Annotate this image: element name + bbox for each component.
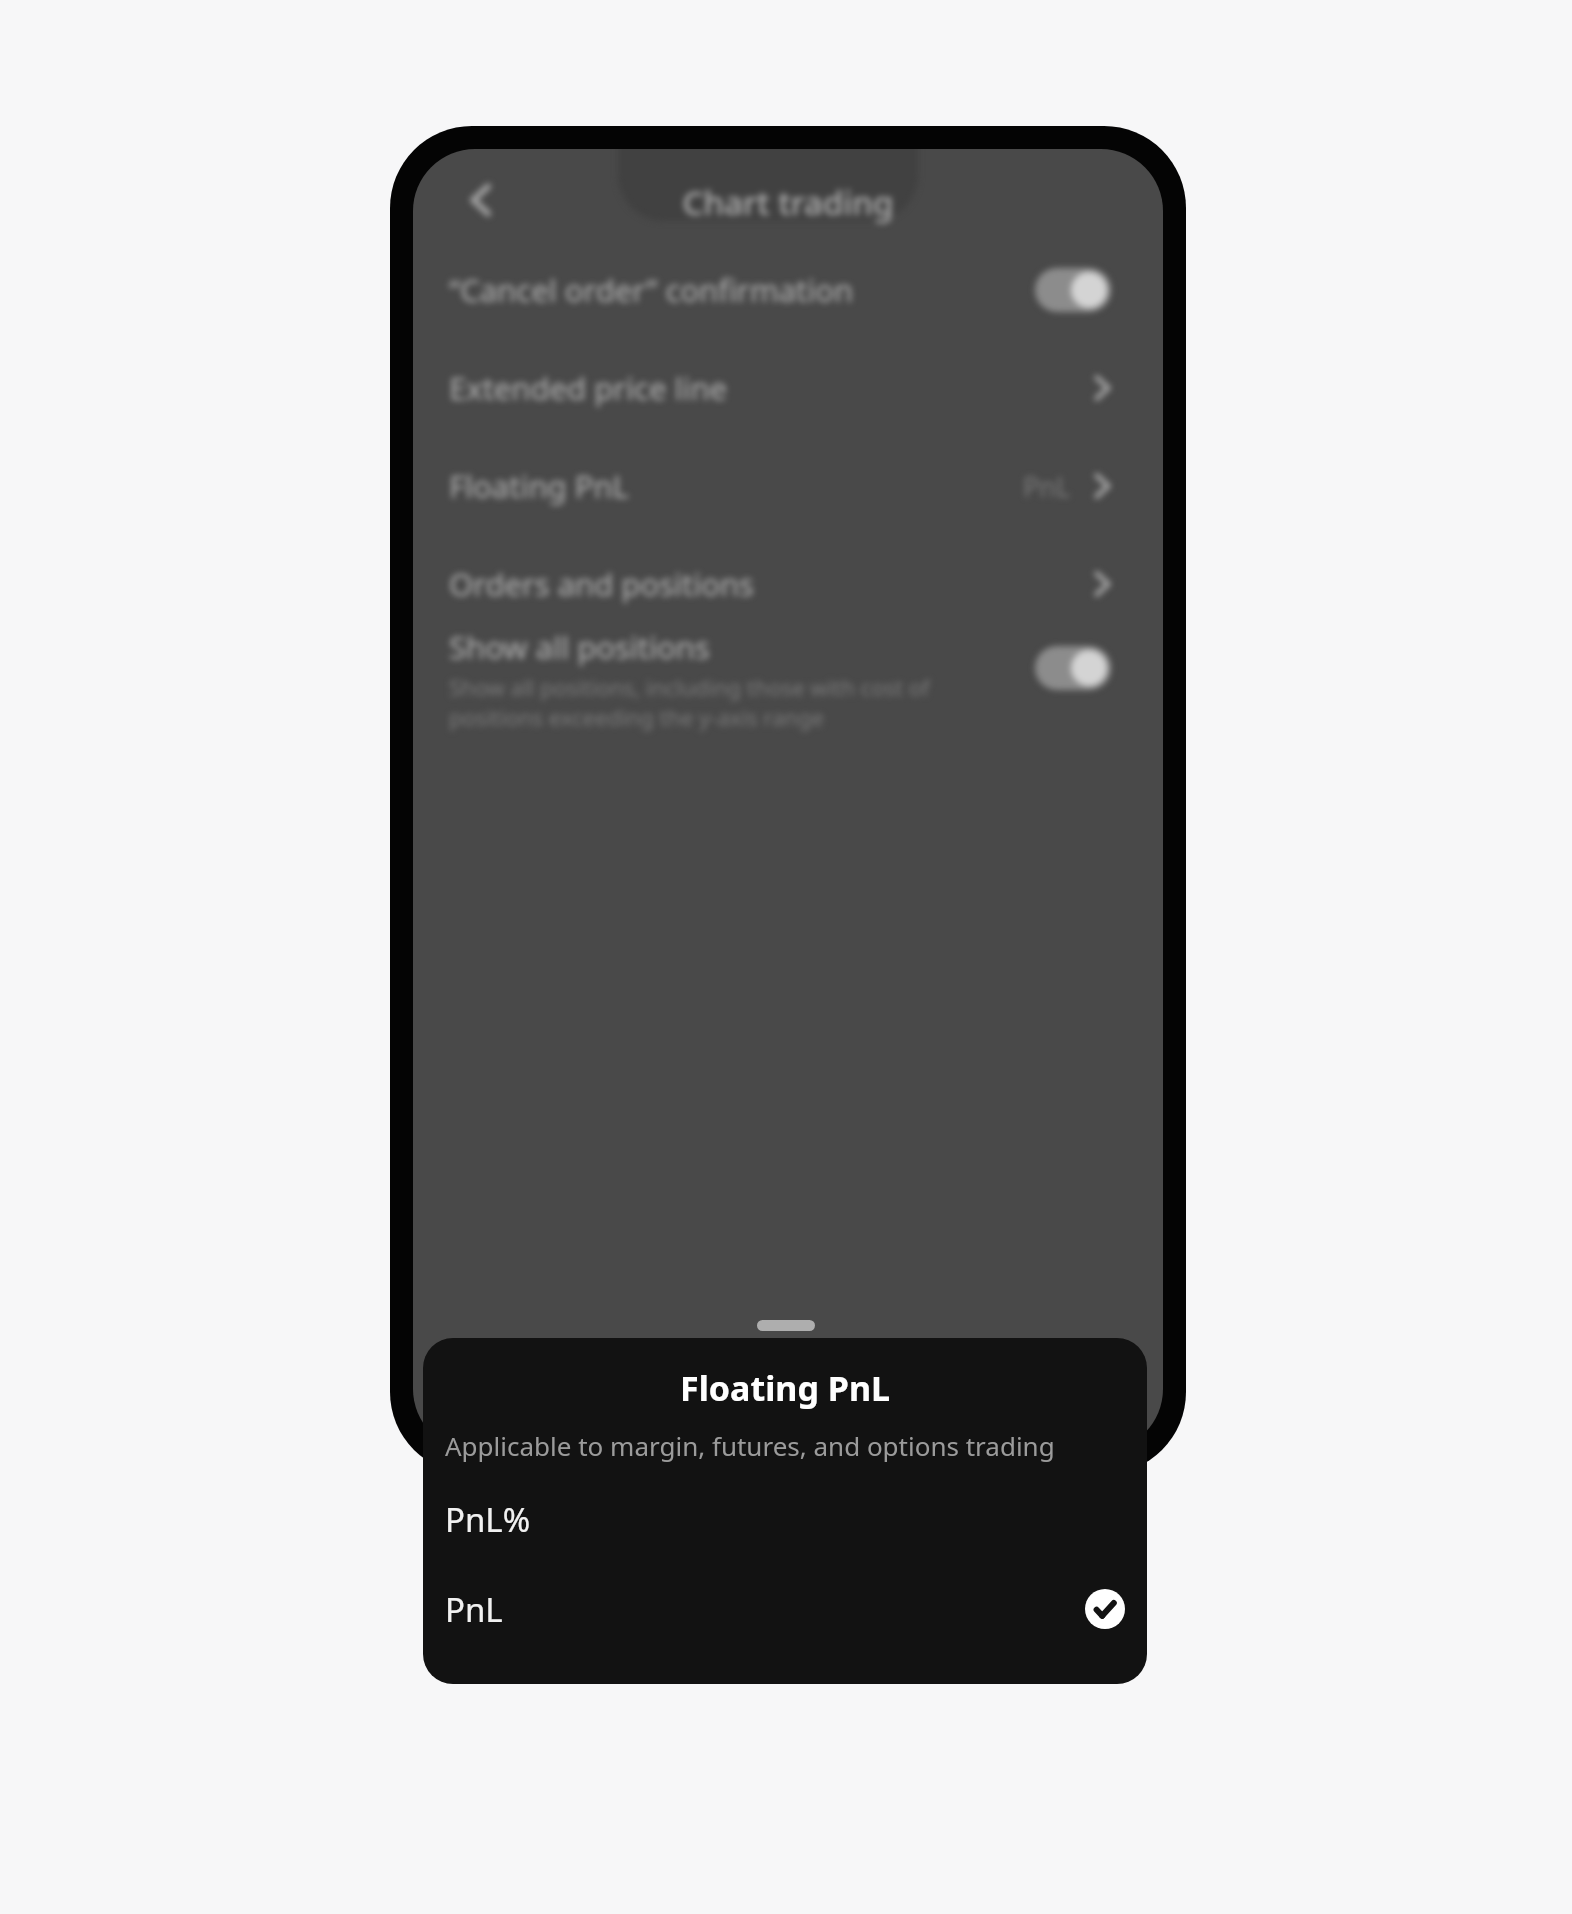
staticText: Applicable to margin, futures, and optio… (445, 1428, 1055, 1463)
button[interactable]: Toggle (1035, 646, 1111, 690)
button[interactable]: “Cancel order” confirmation (413, 241, 1163, 339)
staticText: “Cancel order” confirmation (449, 269, 854, 311)
staticText: PnL (445, 1587, 503, 1632)
staticText: Extended price line (449, 367, 728, 409)
button[interactable]: Orders and positions (413, 535, 1163, 633)
button[interactable]: Extended price line (413, 339, 1163, 437)
staticText: Chart trading (682, 180, 894, 225)
staticText: Floating PnL (449, 465, 629, 507)
button[interactable]: PnL (423, 1566, 1147, 1652)
staticText: Floating PnL (423, 1365, 1147, 1411)
staticText: Show all positions, including those with… (449, 672, 930, 732)
staticText: Show all positions (449, 626, 710, 668)
button[interactable]: Show all positions (413, 614, 1163, 746)
button[interactable]: Back (439, 158, 523, 242)
staticText: PnL% (445, 1497, 531, 1542)
button[interactable]: Toggle (1035, 268, 1111, 312)
staticText: PnL (1023, 468, 1071, 505)
staticText: Orders and positions (449, 563, 754, 605)
button[interactable]: PnL% (423, 1476, 1147, 1562)
button[interactable]: Floating PnL (413, 437, 1163, 535)
